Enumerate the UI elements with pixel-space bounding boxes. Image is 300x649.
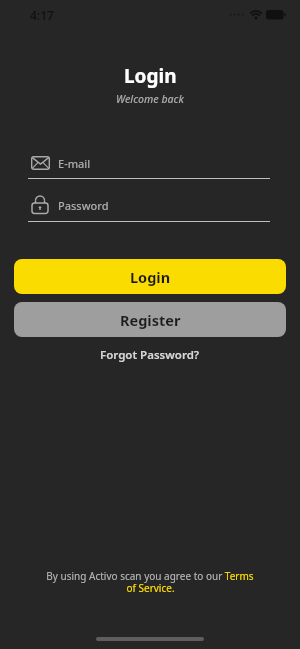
button[interactable]: Login	[14, 259, 286, 294]
staticText: Welcome back	[116, 92, 184, 106]
staticText: Login	[124, 63, 177, 89]
staticText: Register	[120, 310, 181, 330]
button[interactable]: Register	[14, 302, 286, 337]
staticText: Login	[130, 267, 171, 287]
button[interactable]: of Service.	[126, 581, 175, 595]
staticText: Password	[58, 198, 109, 213]
button[interactable]: By using Activo scan you agree to our Te…	[46, 569, 254, 583]
staticText: E-mail	[58, 156, 91, 171]
staticText: 4:17	[30, 7, 54, 23]
button[interactable]: Forgot Password?	[100, 347, 200, 363]
